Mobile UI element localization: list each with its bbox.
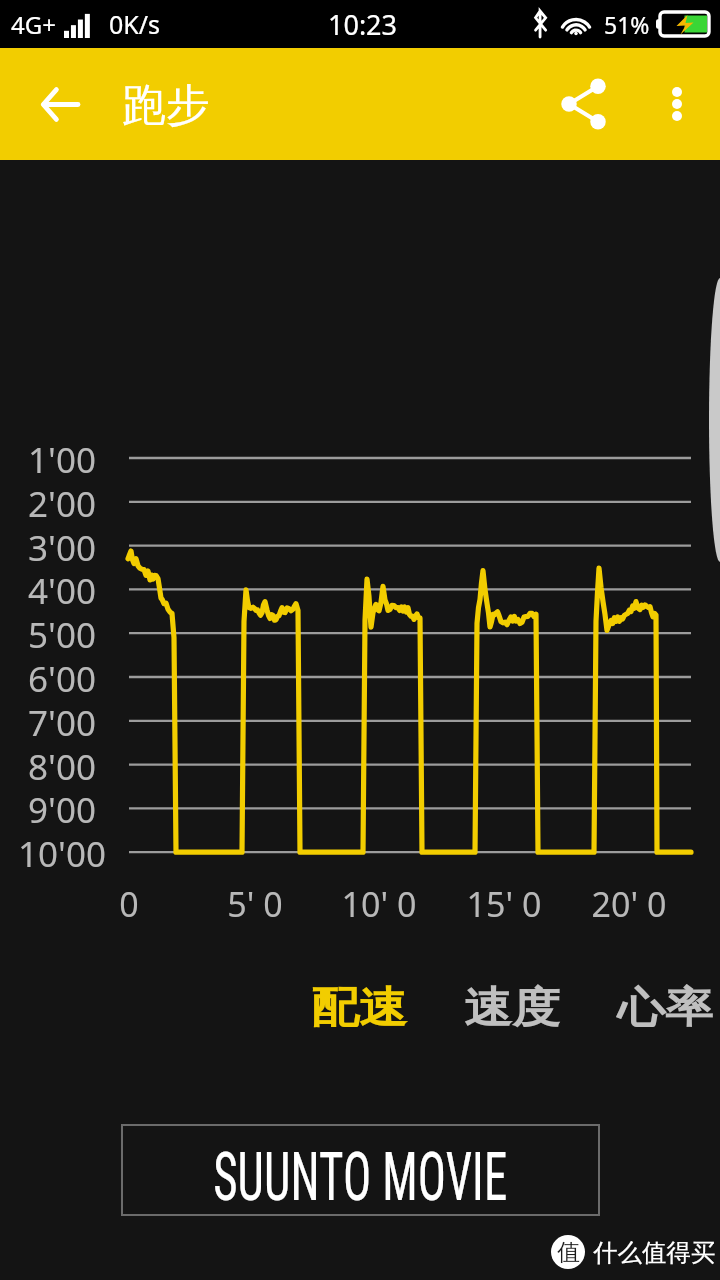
staticText: 值: [557, 1238, 580, 1267]
staticText: 跑步: [122, 78, 210, 133]
button[interactable]: Back: [22, 66, 98, 142]
staticText: 什么值得买: [593, 1237, 716, 1268]
staticText: 4'00: [14, 567, 110, 615]
staticText: 4G+: [11, 8, 56, 41]
staticText: 5'00: [14, 611, 110, 659]
button[interactable]: 心率: [613, 972, 717, 1044]
staticText: 10:23: [328, 6, 398, 43]
button[interactable]: More options: [639, 66, 715, 142]
staticText: 心率: [617, 982, 713, 1034]
staticText: 0K/s: [109, 7, 161, 41]
button[interactable]: 配速: [307, 972, 411, 1044]
button[interactable]: SUUNTO MOVIE: [121, 1124, 600, 1216]
button[interactable]: 速度: [460, 972, 564, 1044]
staticText: 10'00: [14, 830, 110, 878]
staticText: 3'00: [14, 524, 110, 572]
staticText: 7'00: [14, 699, 110, 747]
staticText: 20' 0: [579, 881, 679, 927]
staticText: 51%: [604, 9, 650, 40]
staticText: 6'00: [14, 655, 110, 703]
staticText: 5' 0: [205, 881, 305, 927]
button[interactable]: Share: [546, 66, 622, 142]
staticText: 速度: [464, 982, 560, 1034]
staticText: 15' 0: [454, 881, 554, 927]
staticText: SUUNTO MOVIE: [213, 1138, 508, 1217]
staticText: 配速: [311, 982, 407, 1034]
staticText: 2'00: [14, 480, 110, 528]
staticText: 10' 0: [329, 881, 429, 927]
staticText: 1'00: [14, 436, 110, 484]
staticText: 8'00: [14, 743, 110, 791]
staticText: 0: [79, 881, 179, 927]
staticText: 9'00: [14, 786, 110, 834]
